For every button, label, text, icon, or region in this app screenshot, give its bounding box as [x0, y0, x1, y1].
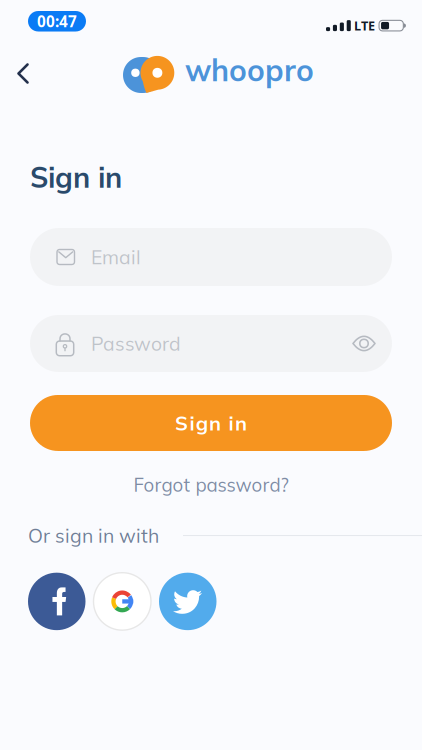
button[interactable]: Sign in with Google: [93, 573, 151, 630]
button[interactable]: Email: [30, 228, 392, 286]
staticText: Email: [91, 245, 141, 269]
staticText: whoopro: [185, 51, 314, 89]
staticText: LTE: [354, 17, 375, 34]
button[interactable]: Password: [30, 315, 392, 372]
staticText: Or sign in with: [28, 523, 159, 548]
staticText: Sign in: [30, 159, 122, 195]
button[interactable]: Back: [0, 52, 43, 96]
button[interactable]: Forgot password?: [133, 473, 288, 496]
staticText: Forgot password?: [133, 473, 288, 496]
staticText: Sign in: [175, 410, 247, 435]
button[interactable]: Sign in: [30, 395, 392, 451]
staticText: Password: [91, 331, 181, 356]
button[interactable]: Sign in with Twitter: [159, 573, 216, 630]
button[interactable]: Sign in with Facebook: [28, 573, 85, 630]
staticText: 00:47: [37, 11, 77, 32]
button[interactable]: Show password: [352, 335, 392, 352]
